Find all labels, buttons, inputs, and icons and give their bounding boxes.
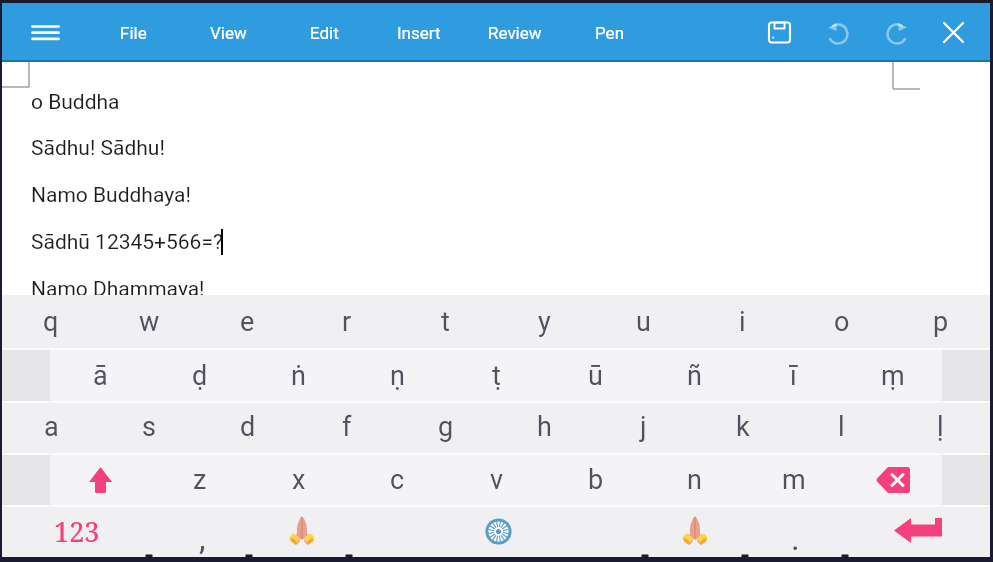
staticText: ṅ: [291, 360, 306, 392]
staticText: f: [342, 411, 352, 443]
button[interactable]: Review: [473, 3, 557, 62]
button[interactable]: ḍ: [150, 350, 249, 401]
staticText: k: [736, 411, 750, 443]
button[interactable]: 123: [2, 505, 152, 557]
button[interactable]: [755, 3, 803, 62]
button[interactable]: y: [495, 295, 594, 348]
staticText: Review: [488, 23, 542, 43]
staticText: y: [538, 306, 551, 338]
staticText: ṃ: [881, 360, 905, 392]
button[interactable]: View: [186, 3, 270, 62]
button[interactable]: x: [249, 455, 348, 505]
button[interactable]: [929, 3, 977, 62]
button[interactable]: .: [745, 505, 845, 557]
staticText: x: [292, 464, 306, 496]
button[interactable]: ṃ: [843, 350, 942, 401]
button[interactable]: Edit: [282, 3, 366, 62]
button[interactable]: h: [495, 401, 594, 453]
button[interactable]: k: [693, 401, 792, 453]
staticText: h: [537, 411, 552, 443]
button[interactable]: ā: [50, 350, 150, 401]
button[interactable]: [873, 3, 921, 62]
button[interactable]: t: [396, 295, 495, 348]
button[interactable]: [24, 3, 66, 62]
button[interactable]: [845, 505, 990, 557]
button[interactable]: d: [198, 401, 297, 453]
button[interactable]: e: [198, 295, 297, 348]
staticText: Pen: [595, 23, 625, 43]
button[interactable]: b: [546, 455, 645, 505]
button[interactable]: [645, 505, 745, 557]
staticText: ī: [790, 360, 797, 392]
button[interactable]: ḷ: [891, 401, 990, 453]
button[interactable]: r: [297, 295, 396, 348]
button[interactable]: Insert: [377, 3, 461, 62]
button[interactable]: ū: [546, 350, 645, 401]
button[interactable]: o: [792, 295, 891, 348]
button[interactable]: ṭ: [447, 350, 546, 401]
button[interactable]: ī: [744, 350, 843, 401]
button[interactable]: n: [645, 455, 744, 505]
staticText: s: [142, 411, 156, 443]
button[interactable]: p: [891, 295, 990, 348]
button[interactable]: ṇ: [348, 350, 447, 401]
staticText: ,: [199, 519, 206, 558]
button[interactable]: j: [594, 401, 693, 453]
button[interactable]: i: [693, 295, 792, 348]
button[interactable]: ñ: [645, 350, 744, 401]
button[interactable]: g: [396, 401, 495, 453]
staticText: ā: [93, 360, 108, 392]
staticText: r: [342, 306, 352, 338]
staticText: j: [640, 411, 647, 443]
staticText: u: [636, 306, 651, 338]
staticText: Edit: [310, 23, 339, 43]
button[interactable]: [352, 505, 645, 557]
staticText: ṇ: [390, 360, 405, 392]
staticText: o: [834, 306, 850, 338]
staticText: ḍ: [192, 360, 208, 392]
button[interactable]: Pen: [568, 3, 652, 62]
staticText: Namo Buddhaya!: [31, 183, 191, 208]
staticText: p: [933, 306, 949, 338]
staticText: w: [139, 306, 160, 338]
button[interactable]: File: [91, 3, 175, 62]
button[interactable]: c: [348, 455, 447, 505]
staticText: t: [441, 306, 450, 338]
button[interactable]: w: [100, 295, 198, 348]
button[interactable]: ,: [152, 505, 252, 557]
staticText: ñ: [687, 360, 702, 392]
button[interactable]: ṅ: [249, 350, 348, 401]
button[interactable]: z: [150, 455, 249, 505]
button[interactable]: s: [100, 401, 198, 453]
staticText: 123: [54, 513, 100, 550]
staticText: m: [782, 464, 806, 496]
staticText: e: [240, 306, 255, 338]
staticText: Sādhu! Sādhu!: [31, 136, 165, 161]
staticText: Namo Dhammaya!: [31, 277, 205, 295]
staticText: g: [438, 411, 454, 443]
staticText: a: [44, 411, 59, 443]
button[interactable]: f: [297, 401, 396, 453]
staticText: v: [490, 464, 504, 496]
button[interactable]: [252, 505, 352, 557]
staticText: c: [390, 464, 405, 496]
button[interactable]: u: [594, 295, 693, 348]
staticText: o Buddha: [31, 90, 120, 115]
staticText: Sādhū 12345+566=?: [31, 230, 223, 255]
staticText: z: [193, 464, 207, 496]
staticText: ḷ: [937, 411, 944, 443]
staticText: d: [240, 411, 256, 443]
button[interactable]: v: [447, 455, 546, 505]
button[interactable]: a: [2, 401, 100, 453]
staticText: View: [210, 23, 247, 43]
button[interactable]: [50, 455, 150, 505]
button[interactable]: l: [792, 401, 891, 453]
button[interactable]: m: [744, 455, 843, 505]
staticText: b: [588, 464, 604, 496]
button[interactable]: [843, 455, 942, 505]
button[interactable]: q: [2, 295, 100, 348]
staticText: ū: [588, 360, 603, 392]
staticText: i: [739, 306, 746, 338]
staticText: ṭ: [492, 360, 501, 392]
button[interactable]: [814, 3, 862, 62]
